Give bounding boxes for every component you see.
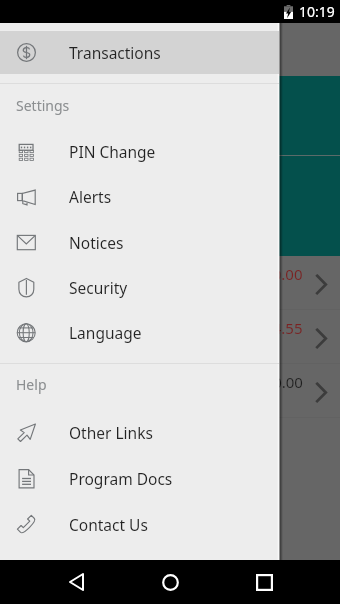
staticText: 1,000.00 — [243, 264, 303, 284]
staticText: 10:19 — [299, 2, 335, 21]
staticText: PIN Change — [69, 141, 156, 162]
button[interactable]: Notices — [0, 220, 279, 265]
staticText: Contact Us — [69, 514, 148, 535]
staticText: Language — [69, 322, 142, 343]
button[interactable]: Alerts — [0, 174, 279, 219]
button[interactable]: 1,234.55 — [0, 310, 340, 363]
staticText: 1,234.55 — [243, 318, 303, 338]
button[interactable]: Recent apps — [234, 560, 294, 604]
button[interactable]: Language — [0, 310, 279, 355]
staticText: Security — [69, 277, 128, 298]
staticText: Alerts — [69, 186, 112, 207]
staticText: Help — [16, 375, 47, 394]
button[interactable]: Security — [0, 265, 279, 310]
button[interactable]: PIN Change — [0, 129, 279, 174]
staticText: Program Docs — [69, 468, 173, 489]
button[interactable]: Transactions — [0, 31, 279, 74]
staticText: 500.00 — [256, 372, 303, 392]
staticText: Notices — [69, 232, 124, 253]
button[interactable]: 1,000.00 — [0, 256, 340, 309]
button[interactable]: Program Docs — [0, 455, 279, 501]
button[interactable]: Contact Us — [0, 501, 279, 547]
button[interactable]: Other Links — [0, 409, 279, 455]
staticText: Transactions — [69, 42, 161, 63]
button[interactable]: Home — [140, 560, 200, 604]
button[interactable]: 500.00 — [0, 364, 340, 417]
button[interactable]: Back — [46, 560, 106, 604]
staticText: Settings — [16, 96, 70, 115]
staticText: Other Links — [69, 422, 153, 443]
